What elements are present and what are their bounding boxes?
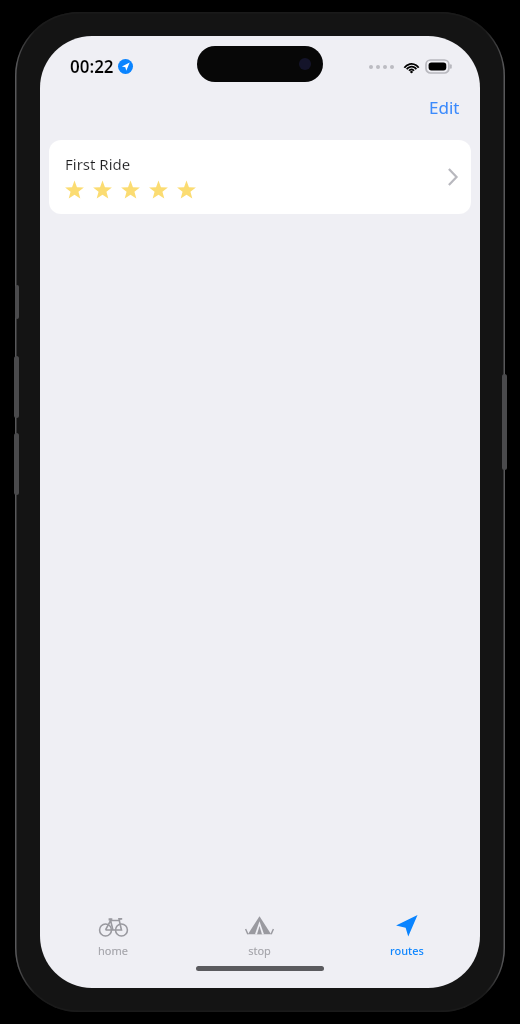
button[interactable]: Edit [421, 92, 468, 123]
button[interactable]: First Ride [49, 140, 471, 214]
button[interactable]: stop [186, 902, 333, 966]
staticText: home [98, 943, 128, 958]
button[interactable]: home [40, 902, 186, 966]
staticText: stop [248, 943, 271, 958]
staticText: 00:22 [70, 55, 114, 78]
staticText: Edit [429, 96, 460, 119]
staticText: First Ride [65, 154, 131, 174]
button[interactable]: routes [333, 902, 480, 966]
staticText: routes [390, 943, 424, 958]
